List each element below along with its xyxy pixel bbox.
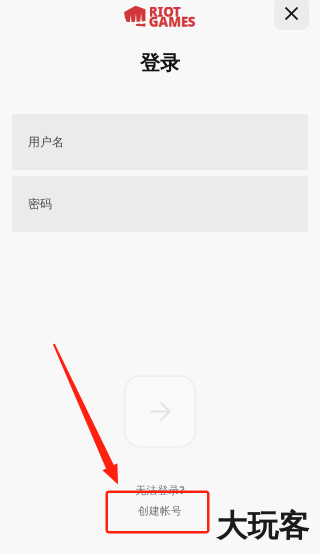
button[interactable]: 密码 — [12, 176, 308, 232]
staticText: 密码 — [28, 197, 52, 211]
staticText: RIOT — [149, 3, 181, 20]
button[interactable]: Close — [274, 0, 309, 30]
staticText: GAMES — [149, 13, 196, 30]
button[interactable]: 用户名 — [12, 114, 308, 170]
staticText: 大玩客 — [216, 507, 309, 545]
staticText: 用户名 — [28, 135, 64, 149]
staticText: 无法登录? — [135, 483, 184, 497]
button[interactable]: 创建帐号 — [132, 498, 188, 523]
staticText: 登录 — [140, 51, 180, 75]
button[interactable]: Submit — [125, 376, 195, 447]
button[interactable]: 无法登录? — [129, 477, 190, 503]
staticText: 创建帐号 — [138, 504, 182, 517]
